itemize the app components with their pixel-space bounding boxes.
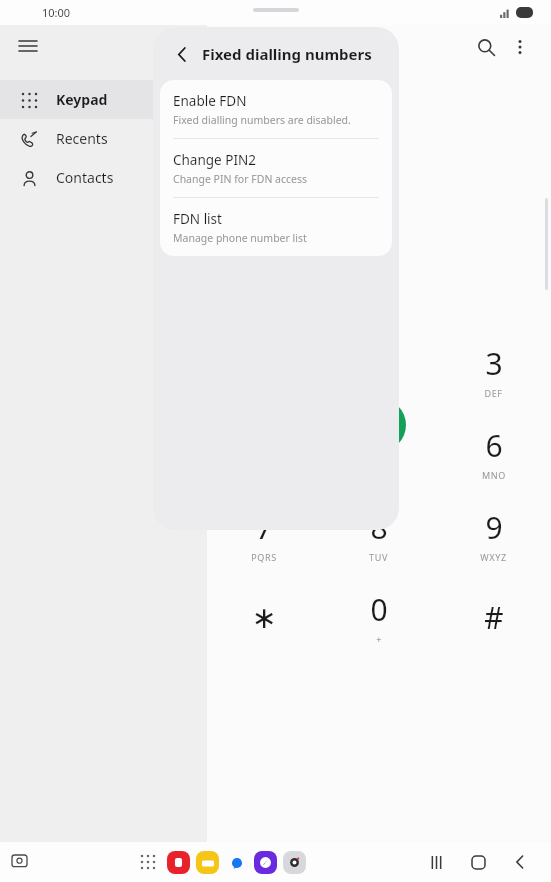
staticText: Manage phone number list	[173, 231, 307, 245]
staticText: 8	[370, 507, 388, 548]
button[interactable]: Change PIN2	[160, 139, 392, 198]
button[interactable]: Back	[499, 842, 541, 882]
button[interactable]: Enable FDN	[160, 80, 392, 139]
button[interactable]: 8	[321, 494, 436, 576]
button[interactable]: Search	[469, 30, 503, 64]
button[interactable]: FDN list	[160, 198, 392, 256]
staticText: Fixed dialling numbers are disabled.	[173, 113, 351, 127]
button[interactable]	[283, 851, 306, 874]
staticText: Contacts	[56, 168, 114, 187]
staticText: Keypad	[56, 90, 108, 109]
button[interactable]: Recents	[0, 119, 197, 158]
button[interactable]: Recent apps	[415, 842, 457, 882]
button[interactable]	[254, 851, 277, 874]
button[interactable]: 3	[436, 330, 551, 412]
staticText: 10:00	[42, 5, 71, 20]
staticText: #	[484, 597, 504, 638]
button[interactable]	[196, 851, 219, 874]
button[interactable]: More options	[503, 30, 537, 64]
button[interactable]	[225, 851, 248, 874]
staticText: Recents	[56, 129, 108, 148]
button[interactable]: ∗	[207, 576, 321, 658]
button[interactable]: Menu	[8, 26, 48, 66]
button[interactable]: #	[436, 576, 551, 658]
staticText: FDN list	[173, 210, 222, 228]
button[interactable]: Call	[352, 398, 406, 452]
button[interactable]	[167, 851, 190, 874]
staticText: 0	[370, 589, 388, 630]
button[interactable]: Split screen	[4, 847, 34, 877]
button[interactable]: Contacts	[0, 158, 197, 197]
staticText: 3	[485, 343, 503, 384]
button[interactable]: Keypad	[0, 80, 197, 119]
button[interactable]: 5	[321, 412, 436, 494]
button[interactable]: Back	[167, 39, 197, 69]
staticText: 9	[485, 507, 503, 548]
button[interactable]: 7	[207, 494, 321, 576]
staticText: 6	[485, 425, 503, 466]
staticText: 7	[255, 507, 273, 548]
staticText: +	[376, 633, 382, 645]
staticText: Change PIN2	[173, 151, 256, 169]
button[interactable]: 6	[436, 412, 551, 494]
staticText: MNO	[482, 469, 506, 481]
button[interactable]: Apps	[135, 849, 161, 875]
staticText: Change PIN for FDN access	[173, 172, 308, 186]
staticText: Fixed dialling numbers	[202, 44, 372, 64]
staticText: DEF	[484, 387, 503, 399]
staticText: Enable FDN	[173, 92, 247, 110]
button[interactable]: 0	[321, 576, 436, 658]
button[interactable]: 2	[321, 330, 436, 412]
button[interactable]: Home	[457, 842, 499, 882]
staticText: TUV	[369, 551, 388, 563]
staticText: ∗	[251, 600, 277, 635]
staticText: PQRS	[251, 551, 277, 563]
button[interactable]: 9	[436, 494, 551, 576]
staticText: WXYZ	[480, 551, 507, 563]
